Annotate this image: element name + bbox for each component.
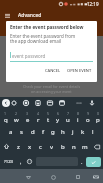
button[interactable]: OPEN EVENT bbox=[65, 67, 94, 74]
button[interactable]: Emoji bbox=[24, 154, 34, 169]
staticText: 9 bbox=[87, 111, 90, 116]
button[interactable]: a bbox=[5, 125, 16, 139]
staticText: j bbox=[72, 128, 74, 136]
staticText: 12:19 bbox=[87, 1, 99, 7]
button[interactable]: 7 bbox=[63, 110, 73, 125]
button[interactable]: 6 bbox=[53, 110, 63, 125]
button[interactable]: 8 bbox=[73, 110, 83, 125]
staticText: , bbox=[20, 158, 22, 165]
button[interactable]: Shift bbox=[0, 139, 13, 154]
button[interactable]: m bbox=[79, 139, 90, 154]
button[interactable]: 5 bbox=[43, 110, 53, 125]
button[interactable]: Voice input bbox=[87, 98, 97, 108]
staticText: 4 bbox=[37, 111, 40, 116]
button[interactable]: CANCEL bbox=[43, 67, 63, 74]
button[interactable]: Comma bbox=[16, 154, 26, 169]
staticText: 2 bbox=[15, 111, 18, 116]
button[interactable]: Home bbox=[47, 171, 59, 183]
button[interactable]: Enter bbox=[86, 157, 101, 167]
button[interactable]: Backspace bbox=[90, 139, 103, 154]
staticText: g bbox=[51, 128, 55, 136]
button[interactable]: Switch keyboard bbox=[90, 171, 102, 183]
staticText: x bbox=[28, 143, 32, 151]
staticText: Enter the event password from bbox=[10, 33, 76, 39]
button[interactable]: z bbox=[13, 139, 24, 154]
staticText: 5 bbox=[47, 111, 50, 116]
button[interactable]: 4 bbox=[33, 110, 43, 125]
button[interactable]: b bbox=[57, 139, 68, 154]
button[interactable]: x bbox=[24, 139, 35, 154]
button[interactable]: Menu bbox=[2, 10, 13, 21]
button[interactable]: Theme bbox=[57, 98, 67, 108]
staticText: l bbox=[92, 128, 94, 136]
button[interactable]: f bbox=[38, 125, 48, 139]
staticText: 0 bbox=[97, 111, 100, 116]
staticText: . bbox=[81, 158, 83, 165]
staticText: CANCEL bbox=[45, 68, 61, 73]
staticText: y bbox=[56, 116, 60, 124]
staticText: r bbox=[37, 116, 40, 124]
staticText: z bbox=[17, 143, 20, 151]
button[interactable]: k bbox=[78, 125, 88, 139]
button[interactable]: v bbox=[46, 139, 57, 154]
staticText: q bbox=[4, 116, 8, 124]
staticText: 1 bbox=[4, 111, 7, 116]
staticText: 7 bbox=[67, 111, 70, 116]
staticText: h bbox=[61, 128, 65, 136]
staticText: on accessing your event bbox=[31, 89, 72, 94]
button[interactable]: g bbox=[48, 125, 58, 139]
button[interactable]: More options bbox=[74, 98, 84, 108]
staticText: the app download email bbox=[10, 38, 61, 44]
staticText: d bbox=[31, 128, 35, 136]
button[interactable]: 1 bbox=[0, 110, 11, 125]
button[interactable]: ?123 bbox=[0, 154, 18, 169]
button[interactable]: l bbox=[88, 125, 98, 139]
staticText: OPEN EVENT bbox=[67, 68, 92, 73]
button[interactable]: Back bbox=[22, 171, 34, 183]
button[interactable]: 9 bbox=[83, 110, 93, 125]
button[interactable]: 0 bbox=[93, 110, 103, 125]
staticText: s bbox=[20, 128, 23, 136]
staticText: 8 bbox=[77, 111, 80, 116]
staticText: 3 bbox=[26, 111, 29, 116]
staticText: v bbox=[50, 143, 54, 151]
button[interactable]: d bbox=[27, 125, 38, 139]
staticText: u bbox=[66, 116, 70, 124]
staticText: o bbox=[86, 116, 90, 124]
button[interactable]: h bbox=[58, 125, 68, 139]
button[interactable]: 3 bbox=[22, 110, 33, 125]
staticText: 6 bbox=[57, 111, 60, 116]
staticText: b bbox=[61, 143, 65, 151]
button[interactable]: Translate bbox=[45, 98, 55, 108]
button[interactable]: c bbox=[35, 139, 46, 154]
button[interactable]: j bbox=[68, 125, 78, 139]
staticText: i bbox=[77, 116, 79, 124]
button[interactable]: Settings bbox=[9, 98, 19, 108]
staticText: c bbox=[39, 143, 42, 151]
button[interactable]: n bbox=[68, 139, 79, 154]
button[interactable]: Period bbox=[77, 154, 86, 169]
staticText: t bbox=[47, 116, 50, 124]
staticText: Check your email for event details bbox=[23, 84, 81, 89]
staticText: m bbox=[82, 143, 88, 151]
staticText: n bbox=[72, 143, 76, 151]
staticText: p bbox=[96, 116, 100, 124]
staticText: k bbox=[81, 128, 85, 136]
button[interactable]: Clipboard bbox=[33, 98, 43, 108]
button[interactable]: s bbox=[16, 125, 27, 139]
button[interactable]: 2 bbox=[11, 110, 22, 125]
button[interactable]: Close suggestions bbox=[2, 99, 10, 107]
staticText: Advanced bbox=[18, 12, 42, 19]
button[interactable]: Recents bbox=[72, 171, 84, 183]
staticText: w bbox=[14, 116, 19, 124]
staticText: a bbox=[9, 128, 13, 136]
button[interactable]: Stickers bbox=[21, 98, 31, 108]
staticText: ?123 bbox=[4, 159, 14, 165]
staticText: Enter the event password below bbox=[10, 24, 84, 30]
staticText: e bbox=[26, 116, 30, 124]
staticText: f bbox=[42, 128, 45, 136]
staticText: event password bbox=[12, 53, 46, 59]
